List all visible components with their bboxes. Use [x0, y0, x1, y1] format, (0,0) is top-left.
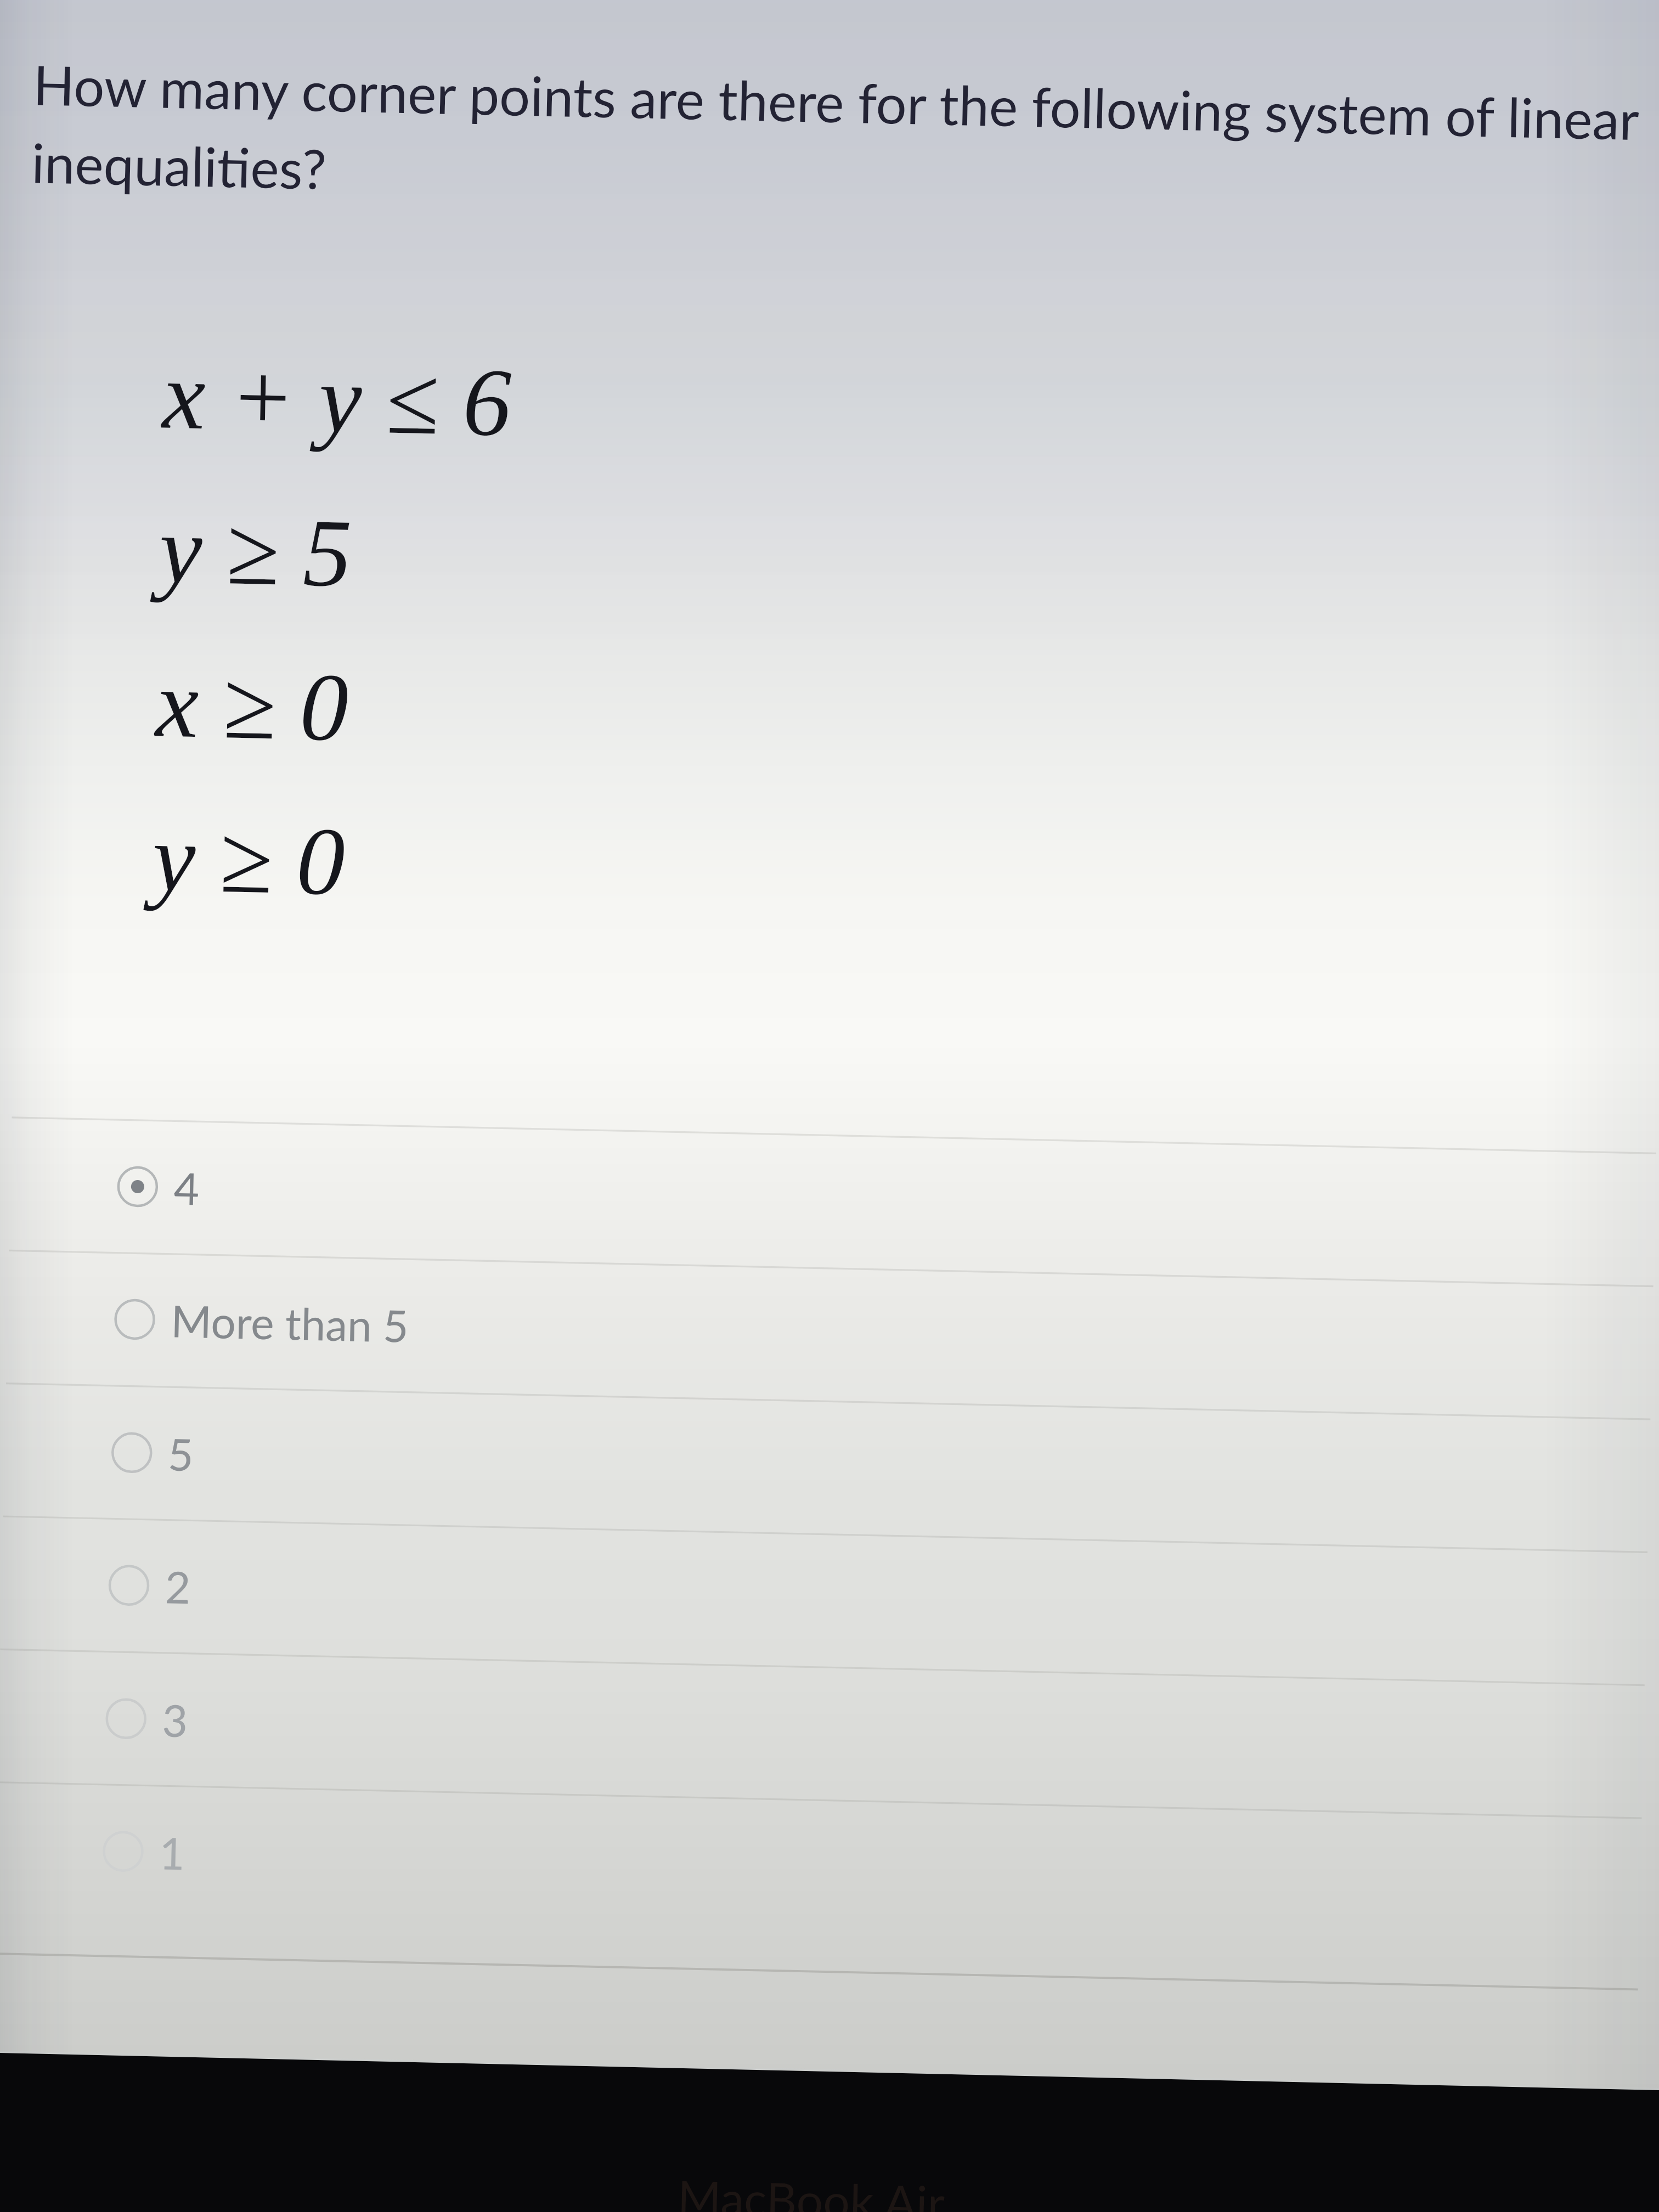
button[interactable]: Selected option [0, 1117, 1634, 1286]
other: Unselected option [111, 1431, 153, 1474]
staticText: 2 [165, 1560, 192, 1613]
button[interactable]: Unselected option [0, 1649, 1623, 1818]
staticText: 1 [159, 1826, 186, 1879]
staticText: y ≥ 5 [158, 496, 353, 607]
staticText: 4 [173, 1161, 200, 1214]
other: Selected option [116, 1165, 159, 1208]
staticText: MacBook Air [677, 2168, 946, 2212]
staticText: 5 [167, 1427, 194, 1480]
other: Unselected option [105, 1697, 147, 1740]
button[interactable]: Unselected option [0, 1249, 1631, 1418]
other: Unselected option [113, 1298, 156, 1341]
button[interactable]: Unselected option [0, 1383, 1628, 1552]
staticText: x ≥ 0 [155, 650, 350, 761]
staticText: 3 [162, 1693, 189, 1746]
staticText: How many corner points are there for the… [31, 51, 1659, 230]
staticText: x + y ≤ 6 [161, 342, 513, 456]
other: Unselected option [108, 1564, 150, 1607]
staticText: More than 5 [170, 1294, 410, 1352]
button[interactable]: Unselected option [0, 1515, 1626, 1684]
button[interactable]: Unselected option [0, 1781, 1620, 1950]
staticText: y ≥ 0 [151, 804, 346, 915]
